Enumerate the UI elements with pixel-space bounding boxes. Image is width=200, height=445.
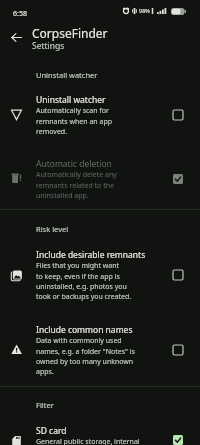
button[interactable] (0, 420, 200, 445)
button[interactable] (0, 319, 200, 382)
staticText: Automatically delete any remnants relate… (36, 170, 117, 200)
staticText: Automatic deletion (36, 158, 112, 170)
button[interactable] (0, 244, 200, 307)
staticText: Uninstall watcher (36, 70, 98, 80)
staticText: Risk level (36, 224, 69, 234)
staticText: Settings (32, 40, 65, 52)
button[interactable]: Back (3, 24, 29, 50)
button[interactable] (0, 153, 200, 206)
staticText: Automatically scan for remnants when an … (36, 106, 113, 136)
staticText: 6:58 (13, 9, 27, 19)
button[interactable] (0, 89, 200, 142)
staticText: SD card (36, 425, 67, 437)
staticText: 98% (139, 7, 150, 14)
staticText: Files that you might want to keep, even … (36, 261, 132, 301)
staticText: General public storage, internal (36, 437, 140, 445)
staticText: Filter (36, 400, 54, 410)
staticText: Data with commonly used names, e.g. a fo… (36, 336, 135, 376)
staticText: Include common names (36, 324, 133, 336)
staticText: Include desirable remnants (36, 249, 146, 261)
staticText: CorpseFinder (32, 25, 108, 41)
staticText: Uninstall watcher (36, 94, 106, 106)
